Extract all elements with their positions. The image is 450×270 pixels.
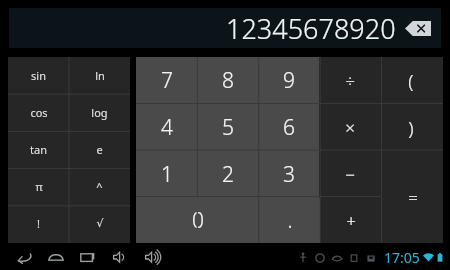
staticText: π [35, 179, 43, 194]
staticText: ln [95, 68, 105, 83]
button[interactable]: log [69, 94, 130, 131]
button[interactable]: Recent apps [78, 247, 98, 267]
button[interactable]: 0 [136, 198, 259, 243]
button[interactable]: 12345678920 [9, 8, 441, 48]
button[interactable]: Back [14, 247, 34, 267]
staticText: − [345, 163, 355, 186]
staticText: cos [30, 105, 48, 120]
button[interactable]: sin [8, 57, 69, 94]
staticText: sin [31, 68, 46, 83]
staticText: 1 [161, 160, 173, 189]
staticText: + [346, 209, 356, 232]
button[interactable]: ( [380, 57, 441, 104]
button[interactable]: tan [8, 131, 69, 168]
button[interactable]: 2 [197, 151, 258, 198]
button[interactable]: e [69, 131, 130, 168]
staticText: 2 [222, 160, 234, 189]
staticText: ^ [96, 179, 103, 194]
staticText: √ [96, 217, 104, 230]
button[interactable]: 5 [197, 104, 258, 151]
button[interactable]: 6 [258, 104, 319, 151]
button[interactable]: − [319, 151, 380, 198]
staticText: ( [408, 68, 414, 94]
staticText: 3 [283, 160, 295, 189]
staticText: ÷ [345, 69, 355, 92]
button[interactable]: ÷ [319, 57, 380, 104]
staticText: 0 [192, 206, 204, 235]
staticText: 17:05 [384, 248, 420, 267]
staticText: 6 [283, 113, 295, 142]
staticText: 4 [161, 113, 173, 142]
button[interactable]: + [320, 198, 381, 243]
button[interactable]: ln [69, 57, 130, 94]
staticText: tan [30, 142, 47, 157]
button[interactable]: cos [8, 94, 69, 131]
button[interactable]: Backspace [405, 21, 431, 36]
button[interactable]: Volume down [110, 247, 130, 267]
button[interactable]: ) [380, 104, 441, 151]
button[interactable]: Volume up [142, 247, 162, 267]
button[interactable]: Home [46, 247, 66, 267]
button[interactable]: 4 [136, 104, 197, 151]
staticText: 8 [222, 66, 234, 95]
button[interactable]: 7 [136, 57, 197, 104]
button[interactable]: ^ [69, 168, 130, 205]
staticText: . [287, 206, 293, 235]
staticText: 5 [222, 113, 234, 142]
staticText: log [91, 105, 108, 120]
staticText: ) [408, 115, 414, 141]
staticText: ! [37, 216, 40, 231]
button[interactable]: ! [8, 205, 69, 242]
staticText: × [345, 116, 355, 139]
button[interactable]: × [319, 104, 380, 151]
button[interactable]: 8 [197, 57, 258, 104]
staticText: 9 [283, 66, 295, 95]
button[interactable]: 1 [136, 151, 197, 198]
button[interactable]: . [259, 198, 320, 243]
button[interactable]: π [8, 168, 69, 205]
staticText: = [408, 186, 418, 209]
button[interactable]: √ [69, 205, 130, 242]
staticText: 12345678920 [226, 10, 396, 47]
staticText: e [96, 142, 103, 157]
button[interactable]: = [382, 151, 443, 243]
staticText: 7 [161, 66, 173, 95]
button[interactable]: 9 [258, 57, 319, 104]
button[interactable]: 3 [258, 151, 319, 198]
